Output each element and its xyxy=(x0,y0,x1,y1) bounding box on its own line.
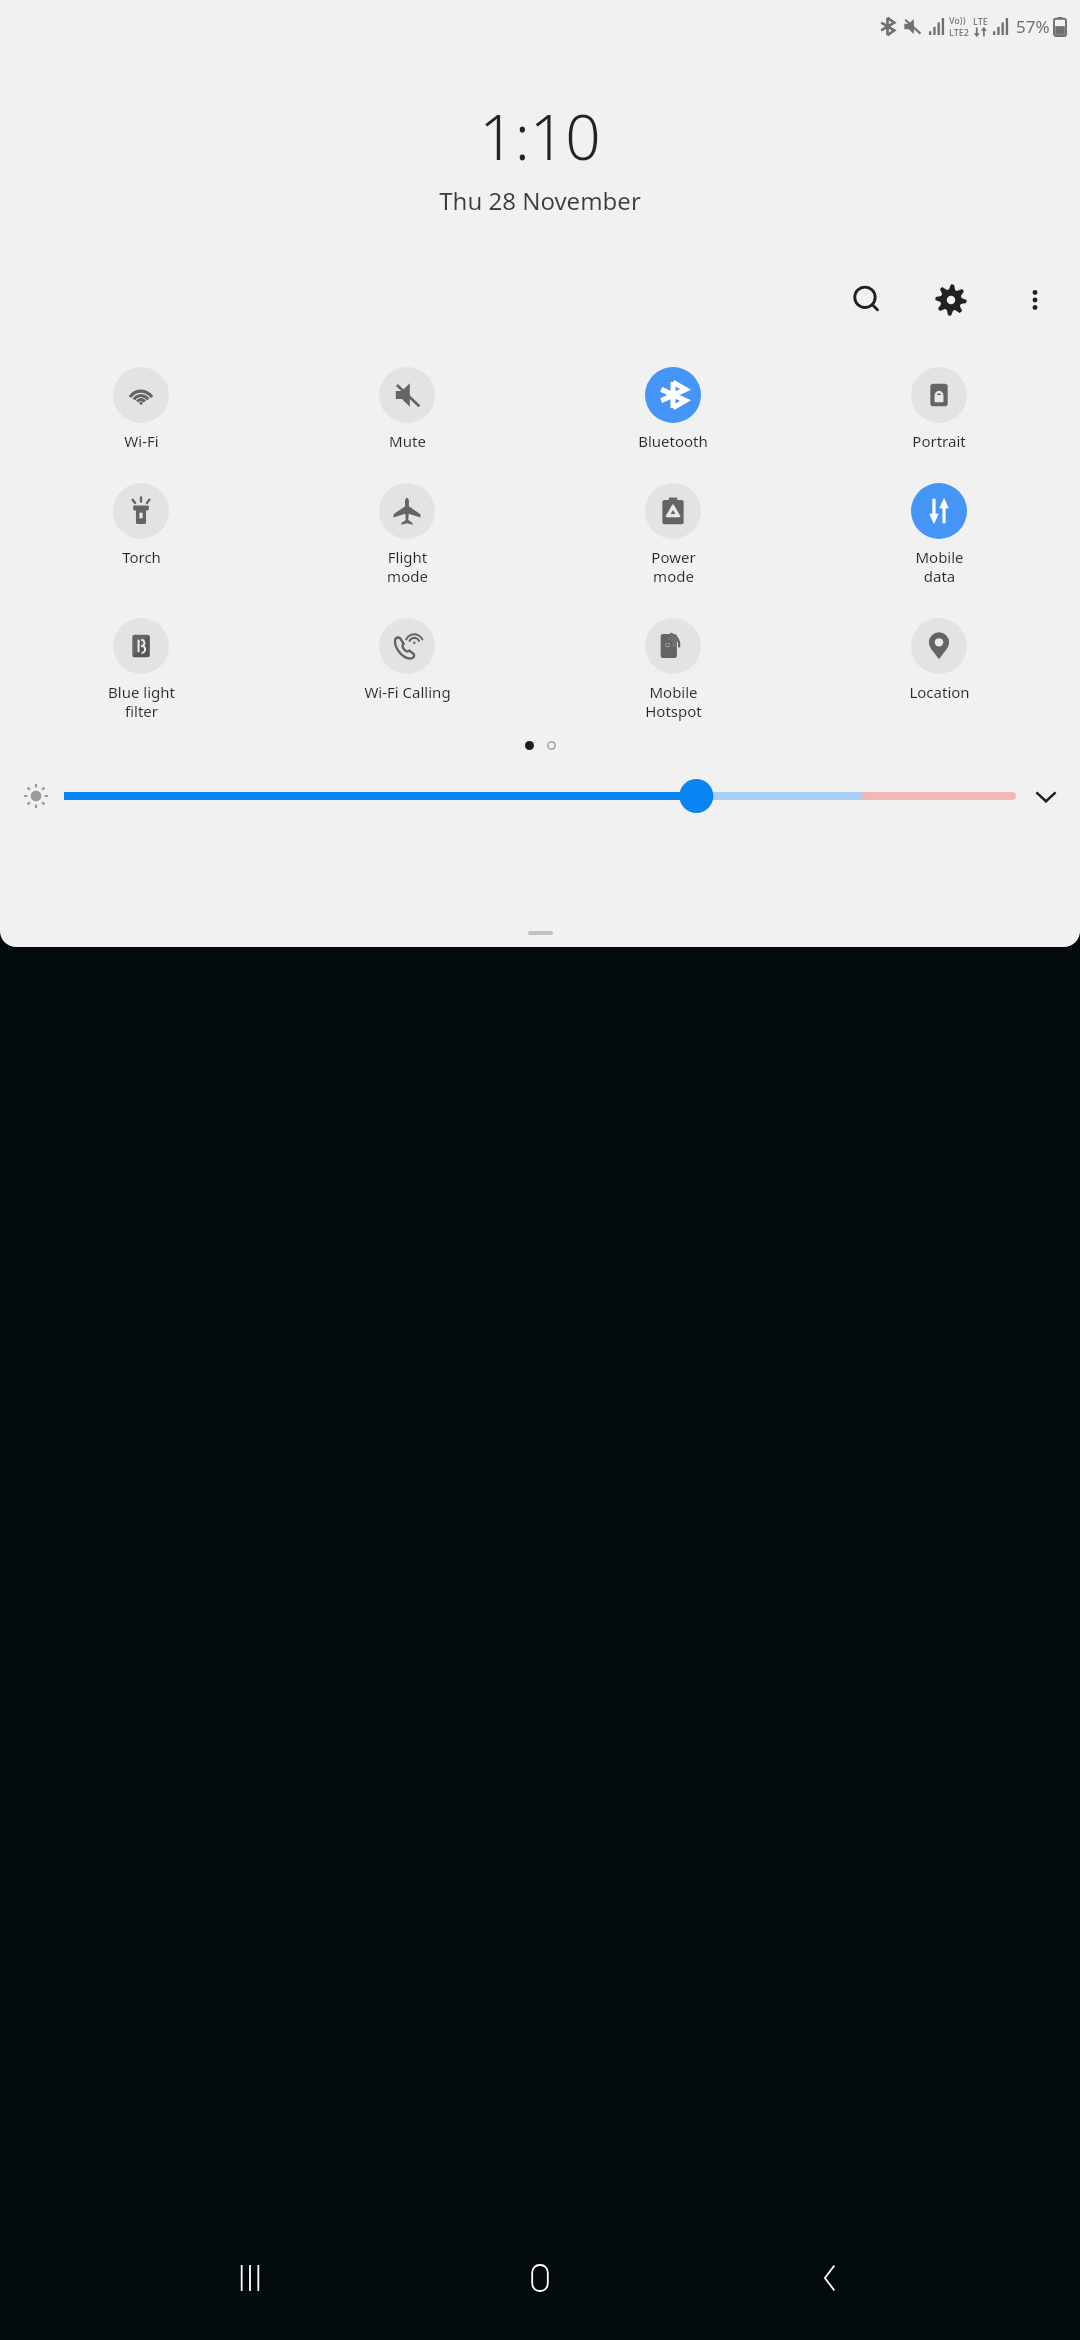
staticText: Wi-Fi xyxy=(124,431,159,451)
button[interactable]: Mobile data xyxy=(806,479,1072,590)
staticText: Portrait xyxy=(912,431,966,451)
staticText: Torch xyxy=(122,547,161,567)
button[interactable]: Portrait xyxy=(806,363,1072,455)
staticText: LTE xyxy=(973,15,988,27)
button[interactable]: Blue light filter xyxy=(8,614,274,725)
button[interactable]: Brightness xyxy=(64,774,1012,818)
staticText: Location xyxy=(909,682,970,702)
button[interactable]: Expand brightness settings xyxy=(1022,772,1070,820)
button[interactable]: 1:10 xyxy=(0,94,1080,217)
button[interactable]: Settings xyxy=(920,269,982,331)
button[interactable]: Torch xyxy=(8,479,274,571)
staticText: Bluetooth xyxy=(638,431,708,451)
button[interactable]: Search xyxy=(836,269,898,331)
button[interactable]: Auto brightness xyxy=(14,774,58,818)
button[interactable]: Power mode xyxy=(540,479,806,590)
staticText: Thu 28 November xyxy=(439,184,641,217)
staticText: Blue light filter xyxy=(108,682,175,721)
button[interactable]: Mute xyxy=(274,363,540,455)
staticText: Power mode xyxy=(651,547,696,586)
button[interactable]: Wi-Fi Calling xyxy=(274,614,540,706)
staticText: Flight mode xyxy=(387,547,428,586)
staticText: Mobile data xyxy=(915,547,964,586)
button[interactable]: Mobile Hotspot xyxy=(540,614,806,725)
button[interactable]: Bluetooth xyxy=(540,363,806,455)
button[interactable]: Home xyxy=(500,2238,580,2318)
button[interactable]: Recent apps xyxy=(210,2238,290,2318)
button[interactable]: Wi-Fi xyxy=(8,363,274,455)
staticText: Mobile Hotspot xyxy=(645,682,702,721)
button[interactable]: Flight mode xyxy=(274,479,540,590)
staticText: Mute xyxy=(389,431,426,451)
staticText: 1:10 xyxy=(479,94,601,178)
button[interactable]: More options xyxy=(1004,269,1066,331)
staticText: LTE2 xyxy=(949,26,969,38)
staticText: Wi-Fi Calling xyxy=(364,682,451,702)
staticText: Vo)) xyxy=(949,14,966,26)
button[interactable]: Back xyxy=(790,2238,870,2318)
button[interactable]: Location xyxy=(806,614,1072,706)
staticText: 57% xyxy=(1016,15,1050,38)
